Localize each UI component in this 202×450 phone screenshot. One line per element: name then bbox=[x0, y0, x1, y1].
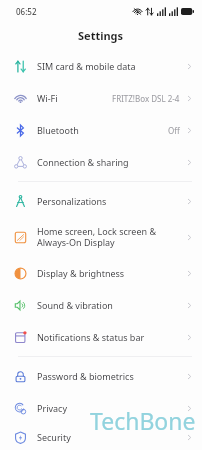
staticText: Home screen, Lock screen & Always-On Dis… bbox=[37, 225, 157, 249]
staticText: Security bbox=[37, 431, 71, 443]
button[interactable]: Privacy bbox=[0, 392, 202, 424]
staticText: Bluetooth bbox=[37, 124, 79, 136]
staticText: Off bbox=[168, 125, 180, 136]
button[interactable]: SIM card & mobile data bbox=[0, 50, 202, 82]
staticText: Notifications & status bar bbox=[37, 331, 145, 343]
button[interactable]: Bluetooth bbox=[0, 114, 202, 146]
staticText: FRITZ!Box DSL 2-4 bbox=[112, 93, 180, 104]
staticText: Personalizations bbox=[37, 195, 107, 207]
button[interactable]: Wi-Fi bbox=[0, 82, 202, 114]
staticText: Display & brightness bbox=[37, 267, 125, 279]
button[interactable]: Personalizations bbox=[0, 185, 202, 217]
staticText: Privacy bbox=[37, 402, 68, 414]
button[interactable]: Password & biometrics bbox=[0, 360, 202, 392]
staticText: Connection & sharing bbox=[37, 156, 129, 168]
staticText: Wi-Fi bbox=[37, 92, 58, 104]
staticText: Sound & vibration bbox=[37, 299, 113, 311]
button[interactable]: Display & brightness bbox=[0, 257, 202, 289]
staticText: TechBone bbox=[90, 405, 196, 436]
staticText: Password & biometrics bbox=[37, 370, 134, 382]
button[interactable]: Connection & sharing bbox=[0, 146, 202, 178]
button[interactable]: Sound & vibration bbox=[0, 289, 202, 321]
button[interactable]: Notifications & status bar bbox=[0, 321, 202, 353]
button[interactable]: Security bbox=[0, 424, 202, 450]
staticText: SIM card & mobile data bbox=[37, 60, 136, 72]
staticText: Settings bbox=[78, 28, 124, 43]
button[interactable]: Home screen, Lock screen & Always-On Dis… bbox=[0, 217, 202, 257]
staticText: 06:52 bbox=[16, 6, 37, 17]
